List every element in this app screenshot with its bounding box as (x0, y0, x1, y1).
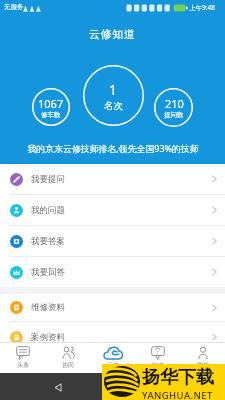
staticText: 上午9:48 (189, 3, 215, 12)
staticText: YANGHUA.NET (142, 389, 213, 400)
staticText: 案例资料 (31, 332, 65, 343)
button[interactable]: 头条 (0, 343, 45, 373)
staticText: 协同 (62, 361, 74, 369)
button[interactable]: 我要提问 (0, 164, 225, 194)
staticText: 名次 (104, 100, 123, 112)
button[interactable]: 维修资料 (0, 294, 225, 321)
staticText: 扬华下载 (142, 366, 214, 389)
staticText: 我要回答 (31, 267, 65, 278)
staticText: 1 (109, 80, 118, 99)
button[interactable]: 我的问题 (0, 195, 225, 225)
staticText: 云修知道 (89, 27, 136, 41)
staticText: 维修资料 (31, 302, 65, 313)
staticText: 我的京东云修技师排名,领先全国93%的技师 (27, 142, 199, 154)
staticText: 修车数 (41, 111, 61, 119)
staticText: 知道 (152, 361, 164, 369)
staticText: 我要提问 (31, 174, 65, 185)
button[interactable]: 云修 (90, 343, 135, 373)
button[interactable]: 我的 (180, 343, 225, 373)
button[interactable]: 我要回答 (0, 257, 225, 287)
staticText: 我的问题 (31, 205, 65, 216)
staticText: 我的 (197, 361, 209, 369)
staticText: 210 (165, 96, 184, 111)
staticText: 无服务 (4, 3, 24, 11)
button[interactable]: 我要答案 (0, 226, 225, 256)
staticText: 云修 (107, 361, 119, 369)
button[interactable]: 知道 (135, 343, 180, 373)
staticText: 1067 (38, 96, 64, 111)
button[interactable]: 协同 (45, 343, 90, 373)
button[interactable]: 案例资料 (0, 322, 225, 352)
staticText: 我要答案 (31, 236, 65, 247)
staticText: 提问数 (164, 111, 184, 119)
staticText: 头条 (17, 361, 29, 369)
button[interactable]: Back (48, 377, 68, 397)
